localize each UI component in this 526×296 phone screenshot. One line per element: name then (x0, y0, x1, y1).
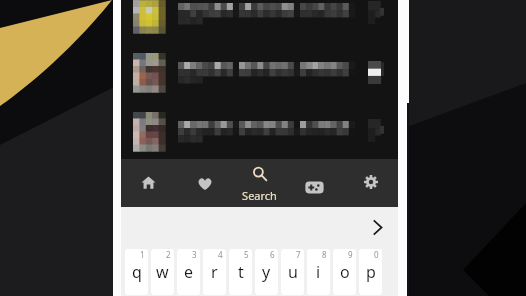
button[interactable]: Home (121, 159, 176, 207)
button[interactable]: 3 (177, 249, 200, 295)
staticText: 0 (374, 249, 379, 260)
button[interactable]: 1 (125, 249, 148, 295)
button[interactable]: Search (232, 159, 287, 207)
staticText: 3 (192, 249, 197, 260)
button[interactable]: 6 (255, 249, 278, 295)
staticText: u (288, 261, 298, 283)
staticText: 5 (244, 249, 249, 260)
staticText: Search (242, 188, 277, 203)
button[interactable] (121, 43, 398, 101)
button[interactable]: 0 (359, 249, 382, 295)
staticText: w (156, 261, 169, 283)
staticText: p (366, 261, 376, 283)
staticText: r (211, 261, 218, 283)
staticText: 7 (296, 249, 301, 260)
button[interactable]: 8 (307, 249, 330, 295)
staticText: e (184, 261, 194, 283)
staticText: 2 (166, 249, 171, 260)
staticText: 8 (322, 249, 327, 260)
button[interactable]: Favourites (177, 159, 232, 207)
staticText: y (262, 261, 271, 283)
button[interactable]: 4 (203, 249, 226, 295)
button[interactable]: 5 (229, 249, 252, 295)
button[interactable]: 7 (281, 249, 304, 295)
button[interactable]: More suggestions (361, 211, 394, 243)
staticText: i (316, 261, 321, 283)
button[interactable]: Games (287, 159, 342, 207)
button[interactable] (121, 0, 398, 42)
staticText: 1 (140, 249, 145, 260)
button[interactable]: Settings (343, 159, 398, 207)
staticText: o (340, 261, 350, 283)
button[interactable]: 9 (333, 249, 356, 295)
button[interactable]: 2 (151, 249, 174, 295)
staticText: t (238, 261, 244, 283)
staticText: 6 (270, 249, 275, 260)
button[interactable] (121, 102, 398, 160)
staticText: 9 (348, 249, 353, 260)
staticText: q (132, 261, 142, 283)
staticText: 4 (218, 249, 223, 260)
